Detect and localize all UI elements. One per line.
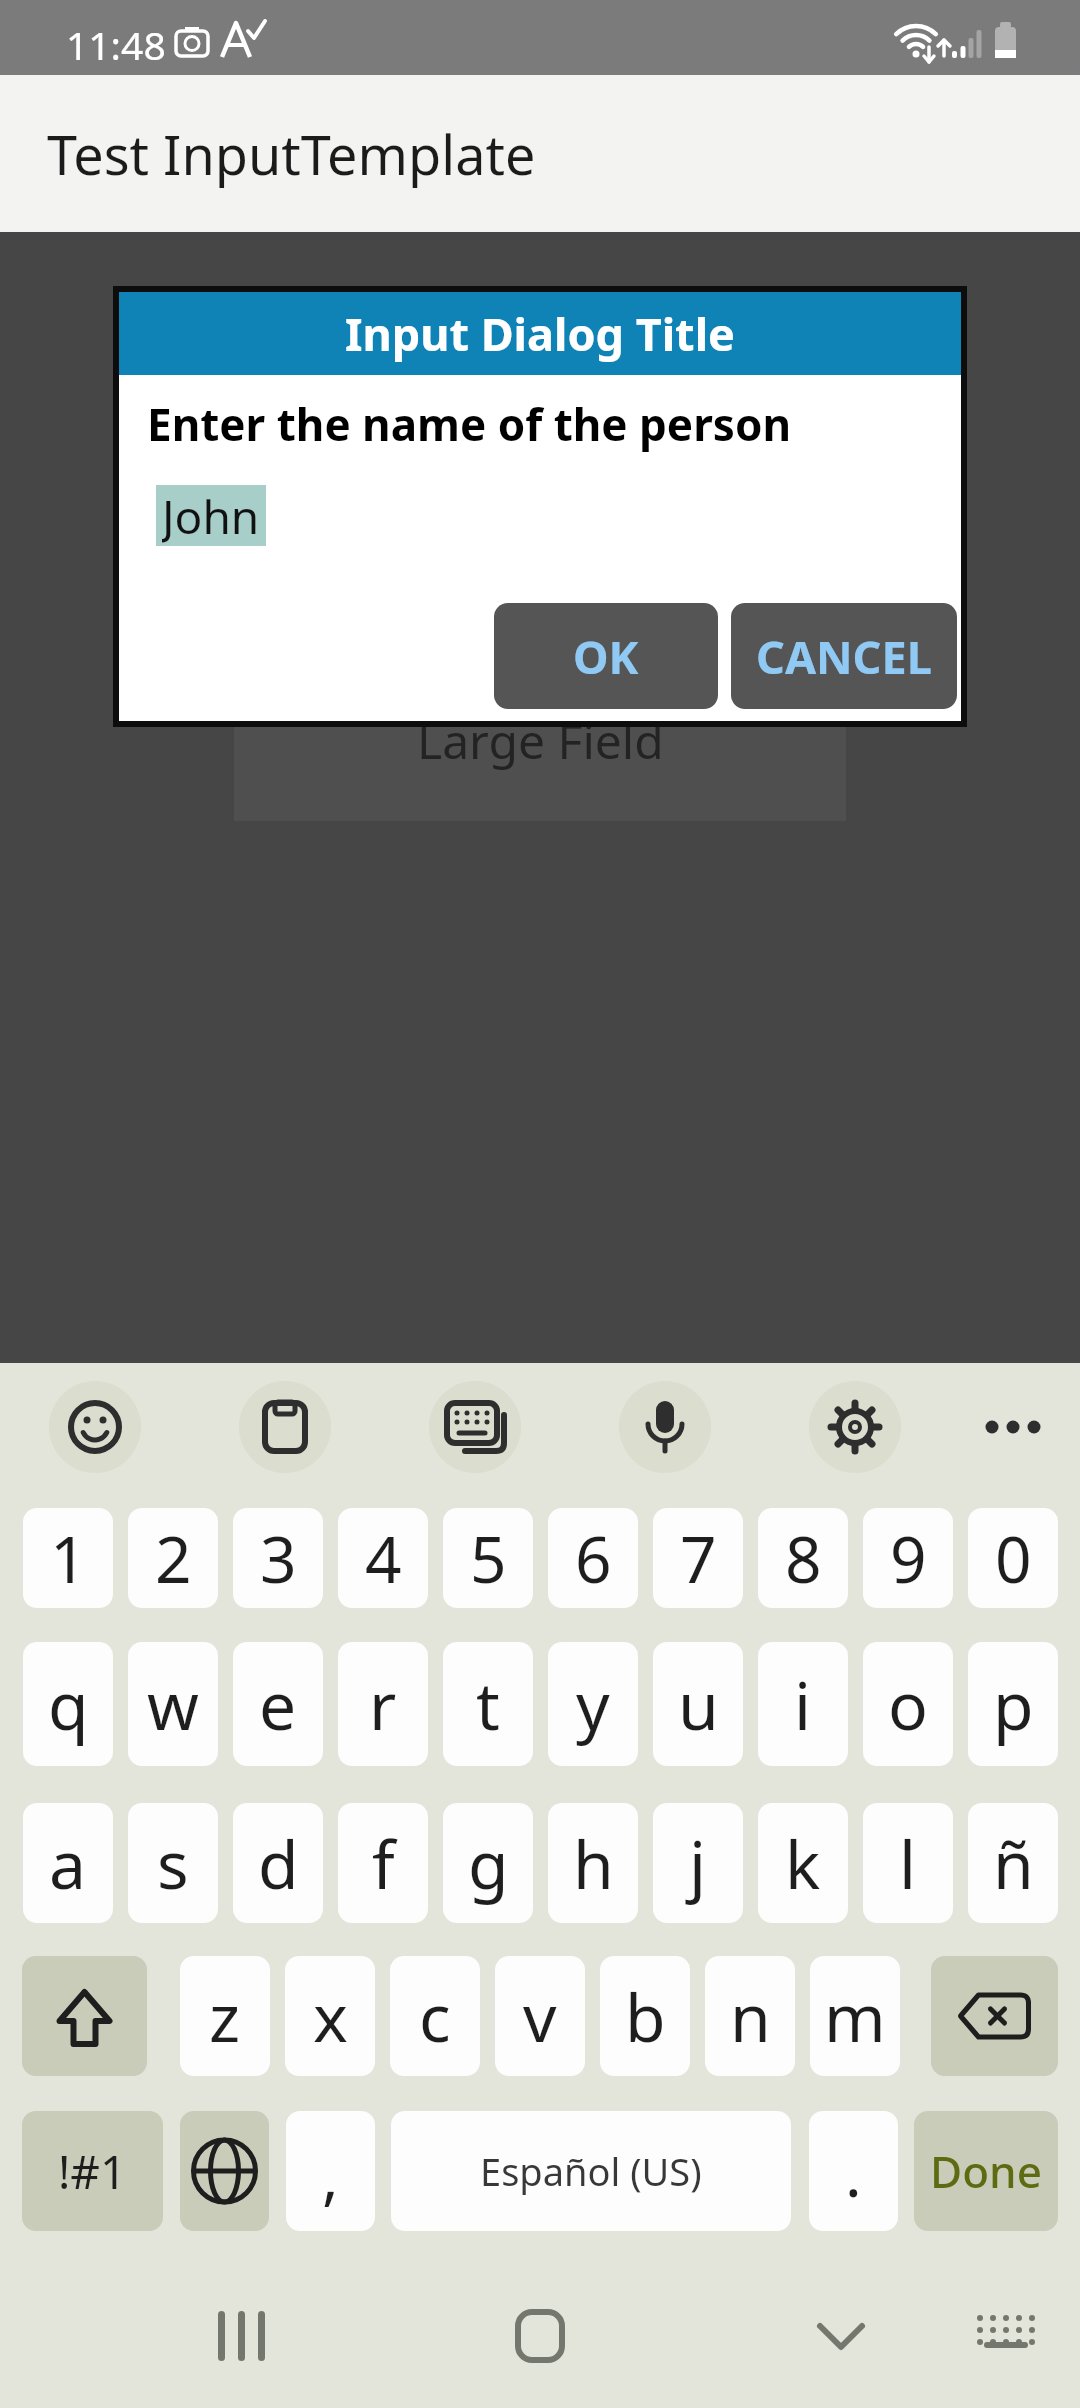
button[interactable]: y [548, 1642, 638, 1766]
button[interactable] [239, 1381, 331, 1473]
button[interactable]: CANCEL [731, 603, 957, 709]
staticText: Español (US) [480, 2145, 702, 2197]
button[interactable]: 8 [758, 1508, 848, 1608]
button[interactable]: OK [494, 603, 718, 709]
button[interactable]: 1 [23, 1508, 113, 1608]
button[interactable]: l [863, 1803, 953, 1923]
button[interactable]: q [23, 1642, 113, 1766]
staticText: 9 [890, 1515, 927, 1602]
button[interactable]: 6 [548, 1508, 638, 1608]
staticText: y [576, 1659, 610, 1749]
staticText: t [476, 1659, 500, 1749]
staticText: r [369, 1659, 397, 1749]
button[interactable]: t [443, 1642, 533, 1766]
staticText: !#1 [58, 2140, 127, 2203]
button[interactable]: . [809, 2111, 898, 2231]
button[interactable]: k [758, 1803, 848, 1923]
button[interactable]: !#1 [22, 2111, 163, 2231]
staticText: o [888, 1659, 928, 1749]
button[interactable]: f [338, 1803, 428, 1923]
button[interactable]: 2 [128, 1508, 218, 1608]
staticText: John [162, 485, 260, 546]
button[interactable]: p [968, 1642, 1058, 1766]
staticText: Large Field [417, 708, 664, 773]
staticText: Test InputTemplate [47, 117, 536, 191]
staticText: n [730, 1971, 771, 2061]
staticText: u [678, 1659, 719, 1749]
staticText: Enter the name of the person [147, 394, 791, 454]
staticText: 0 [995, 1515, 1032, 1602]
staticText: c [419, 1971, 451, 2061]
button[interactable]: Español (US) [391, 2111, 791, 2231]
button[interactable]: 9 [863, 1508, 953, 1608]
staticText: g [468, 1818, 509, 1908]
button[interactable]: o [863, 1642, 953, 1766]
staticText: w [147, 1659, 199, 1749]
button[interactable]: s [128, 1803, 218, 1923]
button[interactable] [429, 1381, 521, 1473]
staticText: e [259, 1659, 297, 1749]
button[interactable]: v [495, 1956, 585, 2076]
button[interactable] [967, 1381, 1059, 1473]
staticText: 7 [680, 1515, 717, 1602]
staticText: 5 [470, 1515, 507, 1602]
button[interactable]: d [233, 1803, 323, 1923]
button[interactable]: h [548, 1803, 638, 1923]
button[interactable]: i [758, 1642, 848, 1766]
staticText: 2 [155, 1515, 192, 1602]
staticText: p [993, 1659, 1034, 1749]
button[interactable]: , [286, 2111, 375, 2231]
staticText: k [785, 1818, 821, 1908]
staticText: i [794, 1659, 812, 1749]
button[interactable]: g [443, 1803, 533, 1923]
button[interactable]: r [338, 1642, 428, 1766]
button[interactable]: 4 [338, 1508, 428, 1608]
staticText: z [209, 1971, 241, 2061]
staticText: ñ [993, 1818, 1034, 1908]
button[interactable]: m [810, 1956, 900, 2076]
staticText: , [322, 2133, 339, 2217]
staticText: 3 [260, 1515, 297, 1602]
button[interactable]: z [180, 1956, 270, 2076]
button[interactable] [931, 1956, 1058, 2076]
staticText: 8 [785, 1515, 822, 1602]
button[interactable]: 5 [443, 1508, 533, 1608]
staticText: j [689, 1818, 707, 1908]
button[interactable]: e [233, 1642, 323, 1766]
staticText: s [157, 1818, 189, 1908]
button[interactable] [809, 1381, 901, 1473]
button[interactable] [22, 1956, 147, 2076]
button[interactable]: u [653, 1642, 743, 1766]
staticText: 6 [575, 1515, 612, 1602]
staticText: 11:48 [66, 18, 166, 71]
staticText: f [372, 1818, 395, 1908]
staticText: d [258, 1818, 299, 1908]
staticText: q [48, 1659, 89, 1749]
button[interactable]: j [653, 1803, 743, 1923]
button[interactable]: ñ [968, 1803, 1058, 1923]
staticText: a [49, 1818, 87, 1908]
button[interactable]: w [128, 1642, 218, 1766]
button[interactable]: n [705, 1956, 795, 2076]
staticText: OK [573, 626, 639, 687]
button[interactable]: a [23, 1803, 113, 1923]
button[interactable]: 7 [653, 1508, 743, 1608]
staticText: v [523, 1971, 557, 2061]
button[interactable] [619, 1381, 711, 1473]
button[interactable]: Done [914, 2111, 1058, 2231]
staticText: b [625, 1971, 666, 2061]
staticText: l [899, 1818, 917, 1908]
staticText: Input Dialog Title [345, 303, 735, 364]
button[interactable] [49, 1381, 141, 1473]
button[interactable]: 0 [968, 1508, 1058, 1608]
staticText: x [313, 1971, 348, 2061]
button[interactable]: 3 [233, 1508, 323, 1608]
staticText: h [573, 1818, 614, 1908]
button[interactable]: c [390, 1956, 480, 2076]
button[interactable] [180, 2111, 269, 2231]
staticText: m [824, 1971, 886, 2061]
button[interactable]: x [285, 1956, 375, 2076]
staticText: 1 [50, 1515, 87, 1602]
staticText: . [845, 2131, 862, 2215]
button[interactable]: b [600, 1956, 690, 2076]
